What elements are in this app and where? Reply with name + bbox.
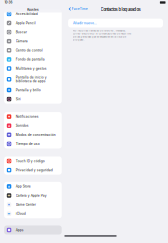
button[interactable]: Accesibilidad: [4, 9, 62, 18]
button[interactable]: Añadir nuevo...: [68, 19, 163, 27]
button[interactable]: Fondo de pantalla: [4, 55, 62, 64]
staticText: Centro de control: [16, 48, 43, 52]
staticText: FaceTime: [72, 7, 88, 11]
staticText: Pantalla de inicio y biblioteca de apps: [16, 75, 47, 83]
button[interactable]: Siri: [4, 95, 62, 104]
staticText: Apps: [16, 228, 24, 232]
button[interactable]: Notificaciones: [4, 112, 62, 121]
staticText: Buscar: [16, 30, 27, 34]
staticText: Multitarea y gestos: [16, 67, 47, 70]
staticText: 10:36: [4, 1, 12, 4]
staticText: Accesibilidad: [16, 12, 38, 16]
staticText: Añadir nuevo...: [73, 21, 97, 25]
button[interactable]: Sonidos: [4, 121, 62, 130]
button[interactable]: Privacidad y seguridad: [4, 166, 62, 175]
staticText: Game Center: [16, 203, 36, 207]
staticText: Sonidos: [16, 124, 29, 128]
button[interactable]: FaceTime: [66, 6, 88, 12]
button[interactable]: Modos de concentración: [4, 130, 62, 139]
button[interactable]: Buscar: [4, 28, 62, 37]
button[interactable]: iCloud: [4, 209, 62, 218]
staticText: Privacidad y seguridad: [16, 168, 53, 172]
button[interactable]: Cartera y Apple Pay: [4, 191, 62, 200]
button[interactable]: Apple Pencil: [4, 18, 62, 28]
staticText: iCloud: [16, 212, 26, 216]
button[interactable]: Apps: [4, 225, 62, 234]
staticText: No recibirás llamadas de teléfono, mensa…: [73, 29, 131, 41]
staticText: Apple Pencil: [16, 21, 36, 25]
staticText: App Store: [16, 184, 31, 188]
button[interactable]: App Store: [4, 182, 62, 191]
button[interactable]: Centro de control: [4, 46, 62, 55]
staticText: Tiempo de uso: [16, 142, 40, 146]
staticText: Pantalla y brillo: [16, 88, 41, 92]
staticText: Cartera y Apple Pay: [16, 194, 47, 197]
staticText: Notificaciones: [16, 115, 39, 119]
staticText: Siri: [16, 97, 21, 101]
button[interactable]: Pantalla y brillo: [4, 85, 62, 95]
button[interactable]: Multitarea y gestos: [4, 64, 62, 73]
button[interactable]: Game Center: [4, 200, 62, 209]
staticText: Ajustes: [27, 8, 39, 11]
staticText: Contactos bloqueados: [101, 7, 141, 12]
button[interactable]: Pantalla de inicio y biblioteca de apps: [4, 73, 62, 85]
button[interactable]: Touch ID y código: [4, 156, 62, 166]
button[interactable]: Cámara: [4, 37, 62, 46]
staticText: Fondo de pantalla: [16, 57, 45, 61]
staticText: Cámara: [16, 39, 28, 43]
button[interactable]: Tiempo de uso: [4, 139, 62, 148]
staticText: Touch ID y código: [16, 159, 45, 163]
staticText: Modos de concentración: [16, 133, 56, 137]
